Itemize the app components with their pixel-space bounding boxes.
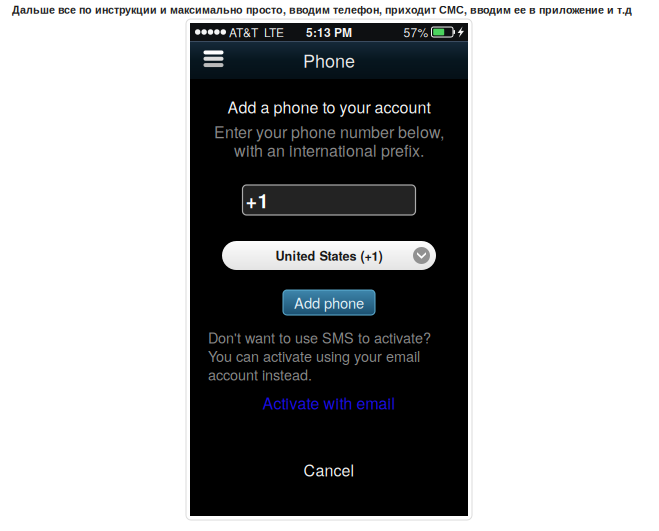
staticText: Activate with email <box>262 391 395 414</box>
staticText: with an international prefix. <box>234 138 424 161</box>
button[interactable]: Add phone <box>283 290 375 315</box>
staticText: Дальше все по инструкции и максимально п… <box>12 2 632 17</box>
staticText: United States (+1) <box>275 246 382 264</box>
staticText: 57% <box>403 23 428 41</box>
staticText: AT&T <box>229 23 258 41</box>
button[interactable]: Menu <box>196 41 230 79</box>
button[interactable]: United States (+1) <box>222 241 436 270</box>
button[interactable]: Cancel <box>269 458 389 480</box>
staticText: You can activate using your email <box>208 345 420 366</box>
staticText: 5:13 PM <box>306 23 352 41</box>
staticText: Add phone <box>294 292 364 313</box>
staticText: LTE <box>264 23 284 41</box>
button[interactable]: Activate with email <box>249 392 409 412</box>
staticText: Phone <box>303 47 355 73</box>
staticText: +1 <box>245 186 268 214</box>
staticText: Enter your phone number below, <box>214 120 444 143</box>
staticText: Add a phone to your account <box>227 95 430 118</box>
staticText: Cancel <box>303 458 354 481</box>
staticText: Don't want to use SMS to activate? <box>208 327 431 347</box>
staticText: account instead. <box>208 364 312 384</box>
